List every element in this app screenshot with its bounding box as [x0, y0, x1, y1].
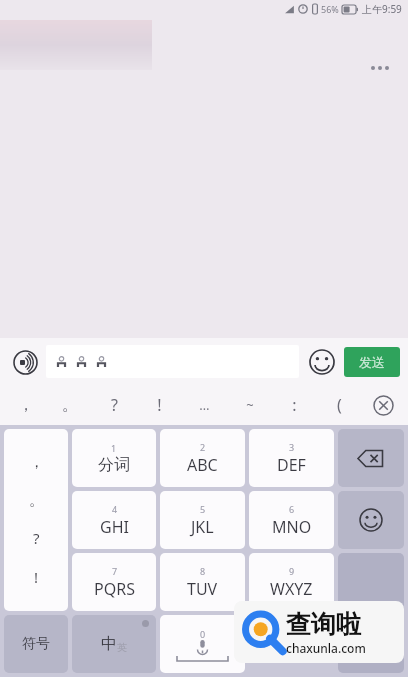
- button[interactable]: [46, 345, 299, 378]
- staticText: ，: [29, 453, 44, 472]
- staticText: ?: [111, 394, 118, 416]
- staticText: PQRS: [94, 578, 135, 600]
- staticText: ABC: [187, 454, 218, 476]
- button[interactable]: 。: [48, 385, 92, 425]
- button[interactable]: 9: [249, 553, 334, 611]
- staticText: 9: [289, 565, 295, 577]
- button[interactable]: Emoji: [305, 345, 339, 379]
- staticText: 分词: [98, 455, 130, 475]
- button[interactable]: …: [182, 385, 227, 425]
- button[interactable]: ，: [4, 385, 48, 425]
- staticText: 。: [29, 491, 44, 510]
- staticText: 56%: [321, 3, 339, 15]
- staticText: 4: [112, 503, 118, 515]
- staticText: ~: [246, 396, 254, 414]
- staticText: WXYZ: [270, 578, 313, 600]
- button[interactable]: 中: [72, 615, 156, 673]
- button[interactable]: ~: [227, 385, 272, 425]
- staticText: 英: [117, 641, 127, 654]
- button[interactable]: Backspace: [338, 429, 404, 487]
- staticText: …: [199, 396, 210, 414]
- button[interactable]: !: [137, 385, 182, 425]
- button[interactable]: Close punctuation bar: [368, 390, 398, 420]
- staticText: !: [157, 394, 162, 416]
- staticText: 1: [111, 442, 117, 454]
- button[interactable]: 符号: [4, 615, 68, 673]
- button[interactable]: ，: [4, 429, 68, 611]
- button[interactable]: 7: [72, 553, 156, 611]
- button[interactable]: 4: [72, 491, 156, 549]
- staticText: JKL: [191, 516, 214, 538]
- button[interactable]: 8: [160, 553, 245, 611]
- button[interactable]: Voice input: [8, 345, 42, 379]
- button[interactable]: More options: [362, 50, 398, 86]
- button[interactable]: 0: [160, 615, 245, 673]
- staticText: 7: [112, 565, 118, 577]
- staticText: 符号: [22, 635, 50, 653]
- staticText: DEF: [277, 454, 306, 476]
- staticText: 。: [62, 395, 78, 415]
- button[interactable]: 5: [160, 491, 245, 549]
- button[interactable]: Emoji keyboard: [338, 491, 404, 549]
- staticText: ?: [33, 528, 40, 548]
- button[interactable]: 1: [72, 429, 156, 487]
- staticText: chaxunla.com: [286, 640, 366, 656]
- button[interactable]: 3: [249, 429, 334, 487]
- staticText: 上午9:59: [362, 2, 402, 16]
- staticText: 6: [289, 503, 295, 515]
- staticText: 8: [200, 565, 206, 577]
- staticText: 0: [200, 628, 206, 640]
- button[interactable]: (: [317, 385, 362, 425]
- button[interactable]: 2: [160, 429, 245, 487]
- staticText: :: [292, 394, 297, 416]
- staticText: ，: [18, 395, 34, 415]
- staticText: (: [337, 394, 342, 416]
- button[interactable]: :: [272, 385, 317, 425]
- staticText: 3: [289, 441, 295, 453]
- button[interactable]: 发送: [344, 347, 400, 377]
- staticText: TUV: [187, 578, 218, 600]
- staticText: !: [34, 567, 39, 587]
- staticText: 发送: [359, 354, 385, 370]
- button[interactable]: Enter: [338, 553, 404, 673]
- staticText: 中: [101, 634, 117, 654]
- staticText: 5: [200, 503, 206, 515]
- staticText: 查询啦: [286, 609, 361, 640]
- button[interactable]: 6: [249, 491, 334, 549]
- staticText: 2: [200, 441, 206, 453]
- button[interactable]: ?: [92, 385, 137, 425]
- staticText: MNO: [272, 516, 312, 538]
- staticText: GHI: [100, 516, 129, 538]
